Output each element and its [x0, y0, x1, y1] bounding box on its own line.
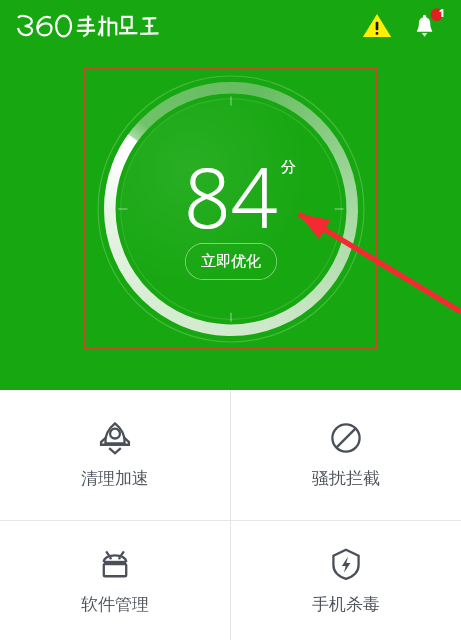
button[interactable]: Notifications [405, 5, 447, 47]
staticText: 软件管理 [81, 594, 149, 615]
button[interactable]: 立即优化 [185, 243, 277, 280]
staticText: 84 [184, 140, 278, 252]
staticText: 骚扰拦截 [312, 468, 380, 489]
button[interactable]: 清理加速 [0, 390, 230, 520]
button[interactable]: 手机杀毒 [231, 521, 461, 640]
staticText: 手机杀毒 [312, 594, 380, 615]
staticText: 立即优化 [201, 252, 261, 271]
staticText: 分 [281, 158, 296, 177]
button[interactable]: 骚扰拦截 [231, 390, 461, 520]
staticText: 1 [439, 6, 445, 20]
button[interactable]: Warning [357, 6, 397, 46]
button[interactable] [14, 12, 186, 40]
staticText: 清理加速 [81, 468, 149, 489]
button[interactable]: 软件管理 [0, 521, 230, 640]
